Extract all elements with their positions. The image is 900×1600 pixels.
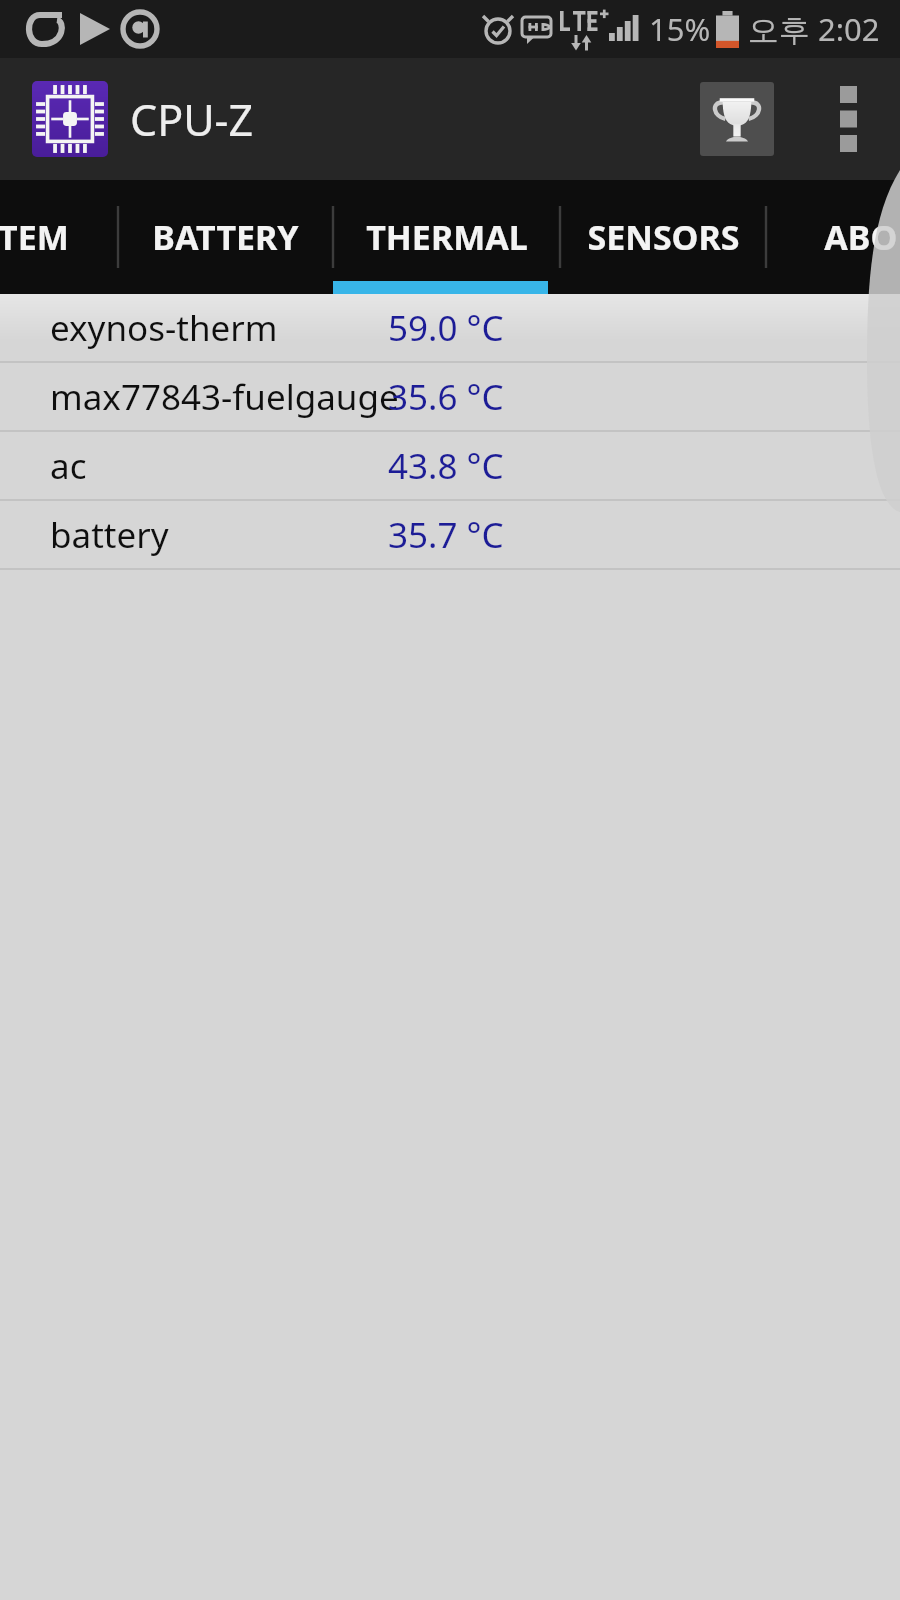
button[interactable]: exynos-therm <box>0 294 900 363</box>
staticText: THERMAL <box>366 214 528 260</box>
staticText: 오후 2:02 <box>748 8 880 50</box>
staticText: battery <box>50 511 169 559</box>
button[interactable]: battery <box>0 501 900 570</box>
button[interactable]: CPU-Z <box>32 81 108 157</box>
staticText: 43.8 °C <box>388 442 504 490</box>
button[interactable]: BATTERY <box>118 180 333 294</box>
button[interactable]: ac <box>0 432 900 501</box>
staticText: exynos-therm <box>50 304 278 352</box>
button[interactable]: max77843-fuelgauge <box>0 363 900 432</box>
staticText: 15% <box>649 8 711 50</box>
staticText: ac <box>50 442 87 490</box>
staticText: BATTERY <box>152 214 299 260</box>
button[interactable]: THERMAL <box>333 180 560 294</box>
staticText: 59.0 °C <box>388 304 504 352</box>
staticText: SENSORS <box>587 214 740 260</box>
staticText: 35.7 °C <box>388 511 504 559</box>
staticText: CPU-Z <box>130 90 254 149</box>
staticText: max77843-fuelgauge <box>50 373 399 421</box>
button[interactable]: More options <box>818 74 878 164</box>
staticText: ABOUT <box>824 214 900 260</box>
staticText: SYSTEM <box>0 214 69 260</box>
button[interactable]: SYSTEM <box>0 180 118 294</box>
button[interactable]: Benchmark <box>700 82 774 156</box>
button[interactable]: ABOUT <box>766 180 900 294</box>
staticText: 35.6 °C <box>388 373 504 421</box>
button[interactable]: SENSORS <box>560 180 766 294</box>
